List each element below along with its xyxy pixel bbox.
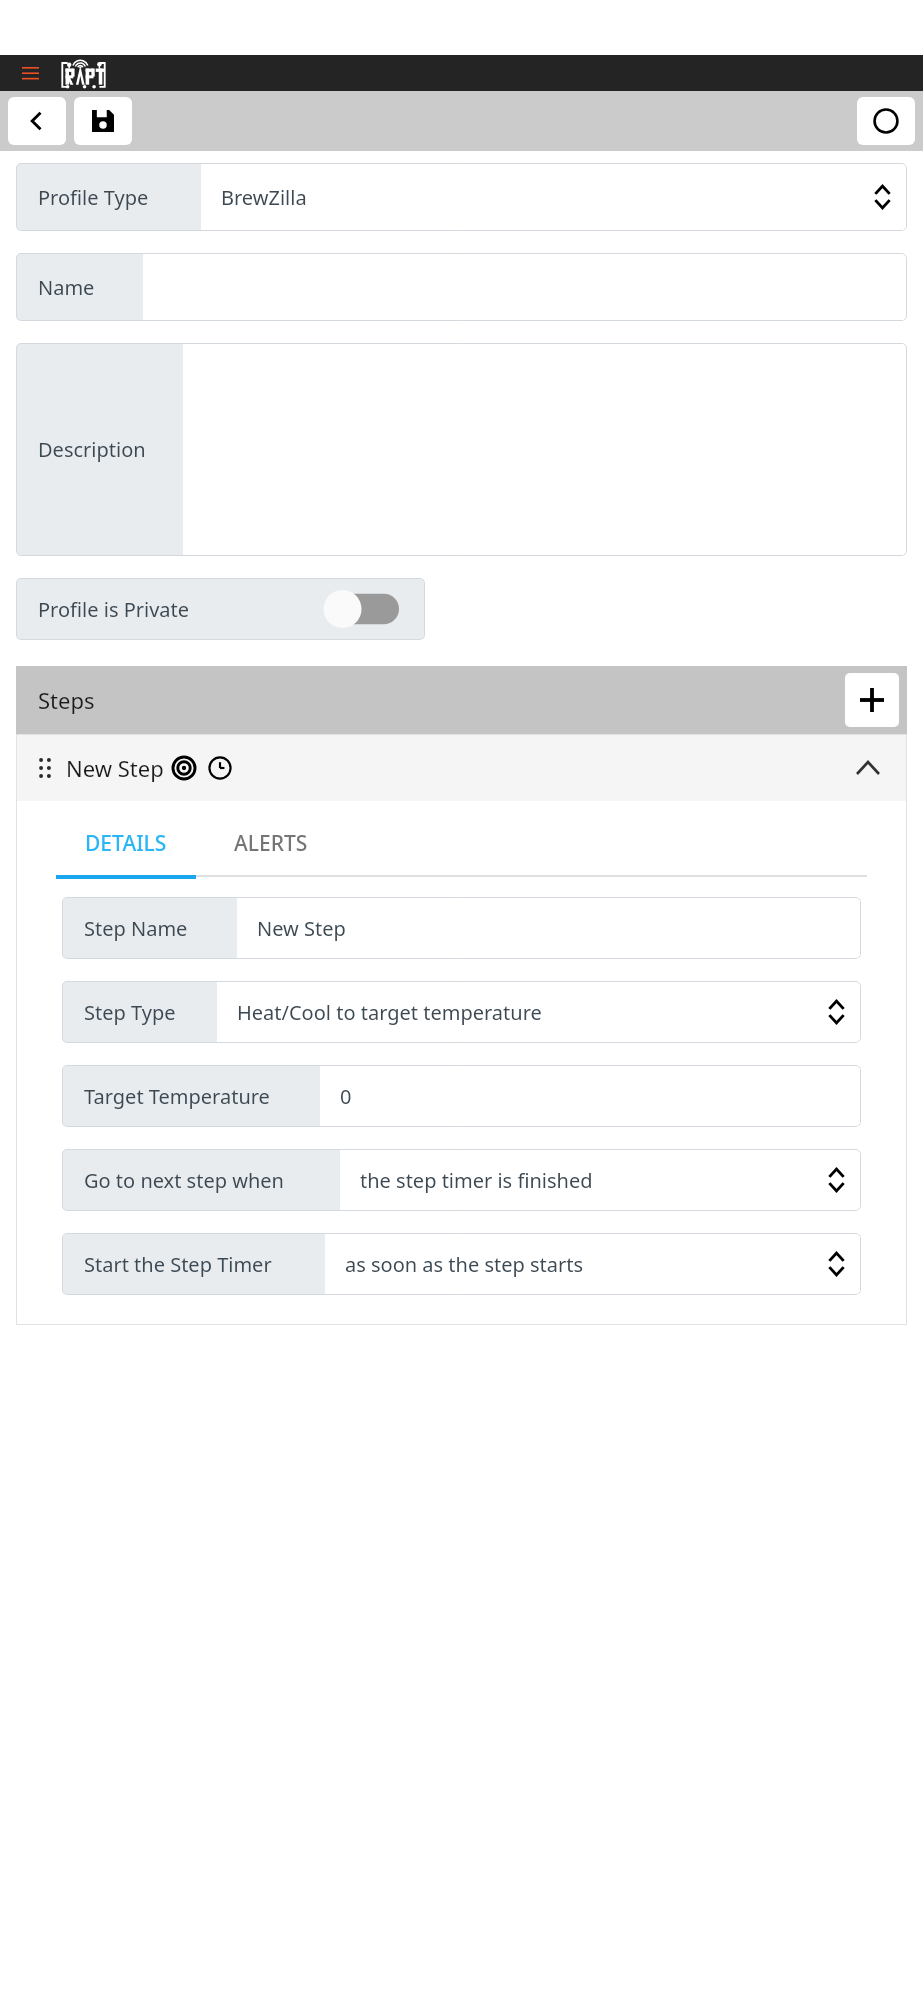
button[interactable]: Back	[8, 97, 66, 145]
staticText: ALERTS	[234, 829, 308, 858]
staticText: Description	[38, 436, 146, 463]
staticText: Step Type	[84, 999, 176, 1026]
staticText: BrewZilla	[221, 184, 307, 211]
button[interactable]: New Step	[16, 734, 907, 801]
staticText: 0	[340, 1083, 352, 1110]
button[interactable]: Start the Step Timer	[62, 1233, 861, 1295]
button[interactable]: Step Name	[62, 897, 861, 959]
button[interactable]: Step Type	[62, 981, 861, 1043]
button[interactable]: ALERTS	[196, 807, 346, 879]
staticText: Profile is Private	[38, 596, 190, 623]
staticText: Heat/Cool to target temperature	[237, 999, 542, 1026]
staticText: Profile Type	[38, 184, 149, 211]
button[interactable]: Name	[16, 253, 907, 321]
staticText: Name	[38, 274, 95, 301]
button[interactable]: Profile Type	[16, 163, 907, 231]
staticText: Start the Step Timer	[84, 1251, 272, 1278]
staticText: Target Temperature	[84, 1083, 270, 1110]
button[interactable]: RAPT home	[57, 58, 110, 89]
staticText: Go to next step when	[84, 1167, 284, 1194]
button[interactable]: Menu	[16, 59, 44, 87]
button[interactable]: Go to next step when	[62, 1149, 861, 1211]
staticText: Steps	[38, 685, 95, 715]
staticText: the step timer is finished	[360, 1167, 593, 1194]
other: Collapse	[855, 755, 881, 781]
staticText: DETAILS	[85, 829, 167, 858]
button[interactable]: Description	[16, 343, 907, 556]
button[interactable]: DETAILS	[56, 807, 196, 879]
staticText: New Step	[257, 915, 346, 942]
button[interactable]: Save	[74, 97, 132, 145]
button[interactable]: Target Temperature	[62, 1065, 861, 1127]
button[interactable]: Profile is Private	[16, 578, 425, 640]
button[interactable]: Help	[857, 97, 915, 145]
button[interactable]: Add step	[845, 673, 899, 727]
staticText: as soon as the step starts	[345, 1251, 584, 1278]
staticText: Step Name	[84, 915, 188, 942]
staticText: New Step	[66, 753, 164, 783]
